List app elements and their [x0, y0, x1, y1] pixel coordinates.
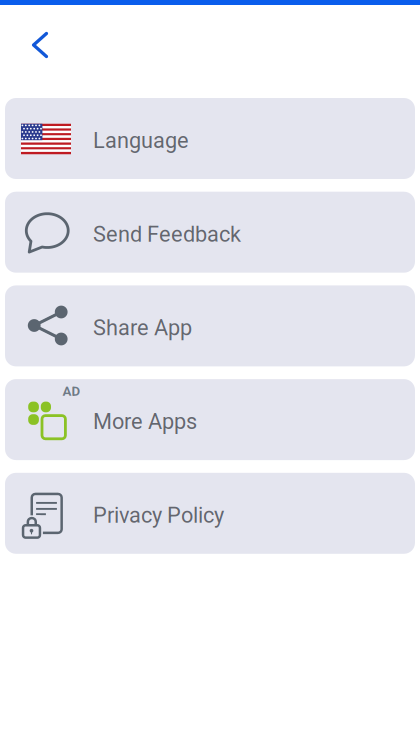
- button[interactable]: AD: [5, 379, 415, 460]
- button[interactable]: Privacy Policy: [5, 473, 415, 554]
- staticText: Share App: [93, 315, 192, 341]
- staticText: Send Feedback: [93, 221, 241, 247]
- button[interactable]: Send Feedback: [5, 192, 415, 273]
- button[interactable]: Share App: [5, 285, 415, 366]
- staticText: Language: [93, 128, 189, 153]
- button[interactable]: Back: [0, 16, 64, 74]
- staticText: More Apps: [93, 409, 197, 434]
- button[interactable]: Language: [5, 98, 415, 179]
- staticText: AD: [62, 383, 80, 399]
- staticText: Privacy Policy: [93, 503, 224, 528]
